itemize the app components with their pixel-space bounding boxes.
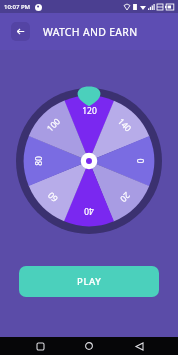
staticText: 80	[33, 156, 45, 166]
staticText: 0	[133, 158, 145, 163]
staticText: 100	[44, 115, 63, 135]
button[interactable]: Prize wheel	[16, 88, 162, 234]
staticText: PLAY	[77, 275, 102, 288]
button[interactable]: Back	[11, 22, 30, 41]
staticText: WATCH AND EARN	[43, 25, 138, 39]
staticText: 60	[45, 189, 61, 205]
staticText: 20	[117, 189, 133, 205]
button[interactable]: PLAY	[19, 266, 159, 297]
staticText: 140	[115, 115, 134, 135]
staticText: 10:07 PM	[4, 3, 31, 11]
button[interactable]: Recent apps	[30, 337, 50, 355]
staticText: 120	[82, 105, 97, 117]
button[interactable]: Back	[129, 337, 149, 355]
staticText: 40	[84, 205, 94, 217]
button[interactable]: Home	[79, 337, 99, 355]
